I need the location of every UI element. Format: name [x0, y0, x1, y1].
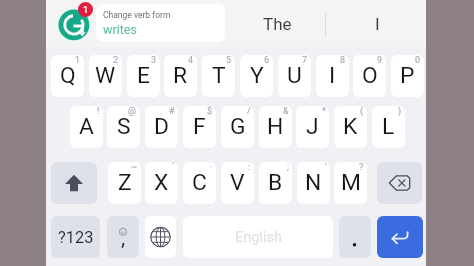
staticText: K — [343, 113, 358, 140]
button[interactable]: Switch language — [145, 216, 176, 258]
button[interactable]: U — [278, 55, 311, 97]
staticText: C — [192, 169, 207, 196]
staticText: ?123 — [58, 228, 94, 247]
staticText: F — [193, 113, 206, 140]
staticText: I — [375, 14, 380, 34]
staticText: : — [248, 162, 251, 173]
button[interactable]: L — [372, 106, 405, 148]
button[interactable]: N — [297, 162, 330, 204]
staticText: I — [329, 62, 336, 89]
staticText: H — [267, 113, 284, 140]
staticText: T — [212, 62, 226, 89]
staticText: Z — [118, 169, 132, 196]
staticText: ) — [398, 106, 402, 117]
button[interactable]: Grammarly suggestion — [57, 2, 93, 38]
button[interactable]: E — [127, 55, 160, 97]
staticText: 3 — [151, 55, 157, 66]
staticText: & — [283, 106, 289, 117]
staticText: / — [247, 106, 251, 117]
staticText: @ — [128, 106, 137, 117]
button[interactable]: G — [221, 106, 254, 148]
staticText: Y — [250, 62, 264, 89]
staticText: A — [79, 113, 94, 140]
staticText: U — [287, 62, 302, 89]
staticText: S — [117, 113, 131, 140]
staticText: 6 — [264, 55, 270, 66]
button[interactable]: Comma and emoji — [107, 216, 139, 258]
staticText: G — [230, 113, 246, 140]
button[interactable]: Backspace — [377, 162, 422, 204]
button[interactable]: M — [334, 162, 367, 204]
staticText: 4 — [188, 55, 194, 66]
button[interactable]: Change verb form — [96, 4, 225, 42]
button[interactable]: I — [316, 55, 349, 97]
staticText: ? — [359, 162, 364, 173]
button[interactable]: Y — [240, 55, 273, 97]
staticText: D — [154, 113, 169, 140]
staticText: · — [210, 162, 213, 173]
button[interactable]: S — [107, 106, 140, 148]
staticText: O — [362, 62, 378, 89]
button[interactable]: I — [344, 0, 410, 47]
button[interactable]: P — [391, 55, 424, 97]
staticText: 8 — [340, 55, 346, 66]
button[interactable]: C — [183, 162, 216, 204]
button[interactable]: W — [89, 55, 122, 97]
staticText: English — [235, 229, 282, 246]
staticText: ' — [325, 162, 327, 173]
staticText: Change verb form — [103, 10, 171, 20]
staticText: X — [154, 169, 169, 196]
button[interactable]: X — [145, 162, 178, 204]
staticText: # — [169, 106, 175, 117]
staticText: 1 — [75, 55, 81, 66]
button[interactable]: Period — [339, 216, 371, 258]
staticText: The — [263, 14, 292, 34]
button[interactable]: T — [202, 55, 235, 97]
staticText: $ — [207, 106, 213, 117]
button[interactable]: B — [259, 162, 292, 204]
staticText: 9 — [377, 55, 383, 66]
button[interactable]: ?123 — [51, 216, 100, 258]
staticText: E — [137, 62, 150, 89]
button[interactable]: Shift — [51, 162, 97, 204]
staticText: writes — [103, 22, 137, 37]
button[interactable]: F — [183, 106, 216, 148]
staticText: ( — [360, 106, 364, 117]
button[interactable]: The — [244, 0, 310, 47]
staticText: P — [400, 62, 415, 89]
staticText: * — [322, 106, 326, 117]
staticText: 0 — [415, 55, 421, 66]
staticText: 5 — [226, 55, 232, 66]
button[interactable]: Q — [51, 55, 84, 97]
staticText: Q — [60, 62, 76, 89]
staticText: R — [173, 62, 188, 89]
staticText: ! — [97, 106, 100, 117]
button[interactable]: R — [164, 55, 197, 97]
staticText: M — [341, 169, 361, 196]
staticText: 7 — [302, 55, 308, 66]
staticText: B — [268, 169, 283, 196]
button[interactable]: D — [145, 106, 178, 148]
staticText: ~ — [131, 162, 138, 173]
staticText: N — [305, 169, 322, 196]
button[interactable]: J — [296, 106, 329, 148]
button[interactable]: Z — [108, 162, 141, 204]
button[interactable]: O — [353, 55, 386, 97]
staticText: ` — [172, 162, 175, 173]
staticText: W — [95, 62, 116, 89]
button[interactable]: A — [70, 106, 103, 148]
button[interactable]: V — [221, 162, 254, 204]
button[interactable]: H — [259, 106, 292, 148]
button[interactable]: English — [183, 216, 333, 258]
staticText: J — [306, 113, 319, 140]
staticText: 1 — [83, 4, 89, 15]
staticText: L — [382, 113, 395, 140]
staticText: ; — [287, 162, 289, 173]
staticText: V — [230, 169, 245, 196]
staticText: , — [121, 226, 126, 251]
staticText: 2 — [113, 55, 119, 66]
button[interactable]: Enter — [377, 216, 423, 258]
button[interactable]: K — [334, 106, 367, 148]
